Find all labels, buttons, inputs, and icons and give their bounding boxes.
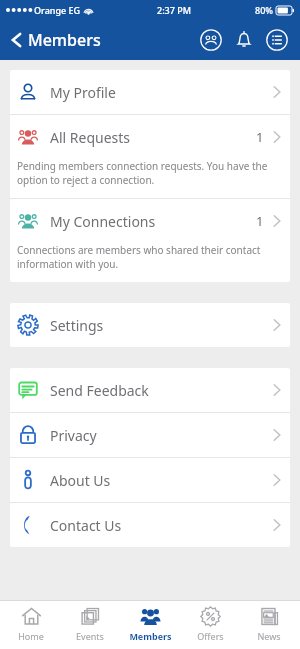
staticText: Home — [18, 630, 44, 642]
staticText: Contact Us — [50, 516, 122, 535]
button[interactable]: Profile — [196, 25, 226, 55]
button[interactable]: My Profile — [10, 70, 290, 114]
staticText: Connections are members who shared their… — [17, 243, 282, 271]
button[interactable]: All Requests — [10, 115, 290, 159]
button[interactable]: My Connections — [10, 199, 290, 243]
button[interactable]: Notifications — [229, 25, 259, 55]
button[interactable]: Offers — [181, 601, 239, 649]
button[interactable]: Menu — [262, 25, 292, 55]
staticText: Settings — [50, 316, 104, 335]
staticText: 2:37 PM — [157, 4, 191, 16]
staticText: Members — [28, 29, 101, 51]
button[interactable]: Privacy — [10, 413, 290, 457]
button[interactable]: Events — [61, 601, 119, 649]
staticText: Pending members connection requests. You… — [17, 159, 282, 187]
button[interactable]: Settings — [10, 303, 290, 347]
staticText: 1 — [256, 128, 264, 146]
button[interactable]: Send Feedback — [10, 368, 290, 412]
staticText: Privacy — [50, 426, 97, 445]
staticText: 80% — [255, 4, 273, 16]
other: Back — [10, 31, 23, 49]
button[interactable]: Home — [2, 601, 60, 649]
staticText: Orange EG — [34, 4, 81, 16]
button[interactable]: Members — [121, 601, 179, 649]
staticText: 1 — [256, 212, 264, 230]
button[interactable]: News — [240, 601, 298, 649]
staticText: My Connections — [50, 212, 156, 231]
button[interactable]: Back — [6, 25, 105, 55]
staticText: All Requests — [50, 128, 131, 147]
staticText: Send Feedback — [50, 381, 149, 400]
button[interactable]: About Us — [10, 458, 290, 502]
staticText: Events — [76, 630, 104, 642]
staticText: About Us — [50, 471, 111, 490]
staticText: Members — [129, 630, 172, 642]
staticText: My Profile — [50, 83, 116, 102]
staticText: News — [257, 630, 281, 642]
staticText: Offers — [197, 630, 224, 642]
button[interactable]: Contact Us — [10, 503, 290, 547]
